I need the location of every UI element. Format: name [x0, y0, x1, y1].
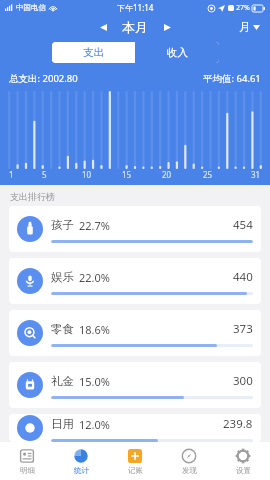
button[interactable]: 发现	[162, 442, 216, 480]
staticText: 15.0%	[79, 374, 110, 389]
staticText: 发现	[182, 466, 197, 475]
button[interactable]: Previous month	[92, 16, 114, 38]
staticText: 娱乐	[51, 270, 74, 284]
staticText: 总支出: 2002.80	[9, 72, 78, 85]
staticText: 日用	[51, 417, 74, 431]
staticText: 统计	[74, 466, 89, 475]
staticText: 记账	[128, 466, 143, 475]
staticText: 收入	[167, 46, 188, 59]
button[interactable]: 月	[237, 18, 262, 36]
staticText: 300	[233, 373, 253, 389]
staticText: 下午11:14	[117, 2, 154, 13]
button[interactable]: 支出	[52, 42, 135, 63]
staticText: 18.6%	[79, 322, 110, 337]
staticText: 12.0%	[79, 417, 110, 432]
staticText: 本月	[122, 19, 148, 35]
button[interactable]: Next month	[156, 16, 178, 38]
staticText: 零食	[51, 322, 74, 336]
staticText: 月	[239, 20, 250, 34]
button[interactable]: 明细	[0, 442, 54, 480]
button[interactable]: 零食	[9, 310, 261, 356]
button[interactable]: 孩子	[9, 206, 261, 252]
button[interactable]: 娱乐	[9, 258, 261, 304]
staticText: 明细	[20, 466, 35, 475]
button[interactable]: 礼金	[9, 362, 261, 408]
staticText: 454	[233, 217, 253, 233]
button[interactable]: 本月	[122, 19, 148, 35]
staticText: 支出排行榜	[10, 191, 55, 202]
staticText: 25	[203, 169, 213, 180]
staticText: 22.0%	[79, 270, 110, 285]
staticText: 27%	[236, 3, 250, 13]
button[interactable]: 统计	[54, 442, 108, 480]
button[interactable]: 日用	[9, 414, 261, 442]
button[interactable]: 记账	[108, 442, 162, 480]
staticText: 10	[82, 169, 92, 180]
staticText: 239.8	[223, 416, 253, 432]
staticText: 礼金	[51, 374, 74, 388]
staticText: 设置	[236, 466, 251, 475]
staticText: 373	[233, 321, 253, 337]
button[interactable]: 设置	[216, 442, 270, 480]
staticText: 孩子	[51, 218, 74, 232]
staticText: 15	[122, 169, 132, 180]
staticText: 440	[233, 269, 253, 285]
staticText: 20	[162, 169, 172, 180]
staticText: 1	[9, 169, 14, 180]
staticText: 5	[42, 169, 47, 180]
staticText: 平均值: 64.61	[203, 72, 261, 85]
staticText: 31	[251, 169, 261, 180]
staticText: 中国电信	[16, 3, 46, 12]
button[interactable]: 收入	[135, 42, 219, 63]
staticText: 22.7%	[79, 218, 110, 233]
staticText: 支出	[83, 46, 104, 59]
